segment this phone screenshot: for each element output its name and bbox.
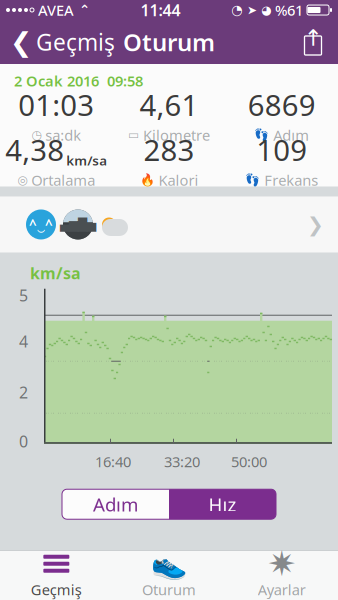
staticText: ◎ bbox=[17, 173, 27, 187]
staticText: Oturum bbox=[123, 26, 215, 58]
staticText: ⌃ bbox=[74, 2, 90, 17]
staticText: ▄▆█▅ bbox=[60, 218, 96, 231]
button[interactable]: ✷ bbox=[225, 547, 338, 600]
button[interactable]: Hız bbox=[169, 489, 276, 519]
button[interactable]: Geçmiş bbox=[0, 547, 113, 600]
staticText: 5 bbox=[19, 285, 28, 306]
button[interactable]: ^‿^ bbox=[0, 196, 338, 252]
staticText: Ortalama bbox=[31, 170, 95, 190]
button[interactable]: 👟 bbox=[113, 547, 225, 600]
staticText: sa:dk bbox=[45, 125, 81, 145]
staticText: Hız bbox=[208, 492, 236, 517]
staticText: 0 bbox=[19, 431, 28, 452]
staticText: Adım bbox=[93, 492, 138, 517]
staticText: 👟 bbox=[150, 547, 187, 580]
staticText: 2 bbox=[19, 382, 28, 403]
staticText: Oturum bbox=[142, 580, 196, 599]
button[interactable]: Adım bbox=[62, 489, 169, 519]
staticText: 50:00 bbox=[231, 452, 267, 471]
staticText: 16:40 bbox=[95, 452, 131, 471]
staticText: 4,61 bbox=[139, 85, 198, 124]
button[interactable]: ❮ bbox=[0, 21, 115, 63]
staticText: 👣 bbox=[254, 128, 269, 142]
staticText: ↑ bbox=[303, 25, 322, 51]
staticText: Kilometre bbox=[143, 125, 210, 145]
staticText: 11:44 bbox=[140, 0, 180, 21]
staticText: km/sa bbox=[66, 151, 107, 169]
staticText: ➤ bbox=[247, 3, 257, 17]
staticText: Geçmiş bbox=[31, 580, 82, 599]
staticText: 283 bbox=[143, 130, 194, 169]
staticText: 2 Ocak 2016 09:58 bbox=[14, 71, 143, 90]
staticText: 4 bbox=[19, 331, 28, 352]
staticText: %61 bbox=[275, 0, 303, 20]
staticText: km/sa bbox=[30, 262, 81, 284]
button[interactable]: Share bbox=[302, 22, 338, 62]
staticText: ◕ bbox=[261, 3, 271, 17]
staticText: 109 bbox=[256, 130, 307, 169]
staticText: Ayarlar bbox=[258, 580, 306, 599]
staticText: 33:20 bbox=[164, 452, 200, 471]
staticText: 6869 bbox=[248, 85, 316, 124]
staticText: ✷ bbox=[267, 544, 296, 583]
staticText: 01:03 bbox=[18, 85, 94, 124]
staticText: AVEA bbox=[34, 0, 74, 20]
staticText: ◷ bbox=[31, 128, 41, 142]
staticText: ^‿^ bbox=[29, 216, 53, 233]
staticText: 🔥 bbox=[139, 173, 154, 187]
staticText: ◔ bbox=[231, 2, 243, 17]
staticText: ❮ bbox=[10, 27, 32, 57]
staticText: ❯ bbox=[307, 213, 324, 236]
staticText: 4,38 bbox=[5, 130, 64, 169]
staticText: ▭ bbox=[128, 128, 139, 142]
staticText: Geçmiş bbox=[36, 27, 115, 57]
staticText: Adım bbox=[273, 125, 309, 145]
staticText: Frekans bbox=[264, 170, 318, 190]
staticText: 👣 bbox=[245, 173, 260, 187]
staticText: Kalori bbox=[158, 170, 198, 190]
